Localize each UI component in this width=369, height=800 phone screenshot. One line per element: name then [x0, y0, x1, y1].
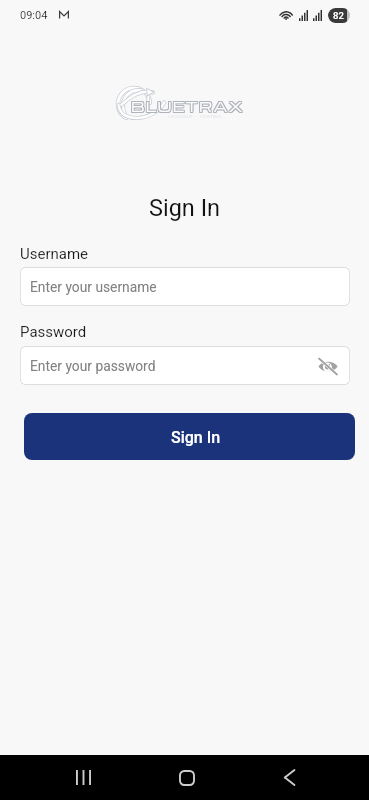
- button[interactable]: Sign In: [24, 413, 355, 460]
- staticText: Sign In: [0, 194, 369, 222]
- staticText: Password: [20, 323, 87, 341]
- button[interactable]: Enter your username: [20, 267, 350, 306]
- staticText: BLUETRAX: [130, 98, 244, 116]
- staticText: BLUETRAX: [131, 98, 245, 116]
- button[interactable]: Show password: [316, 354, 340, 378]
- button[interactable]: Enter your password: [20, 346, 350, 385]
- button[interactable]: Home: [163, 755, 211, 800]
- staticText: Sign In: [171, 428, 221, 447]
- staticText: 09:04: [20, 9, 48, 22]
- staticText: 82: [333, 10, 344, 21]
- staticText: Enter your username: [30, 279, 157, 295]
- staticText: BLUETRAX: [130, 96, 244, 114]
- staticText: Username: [20, 245, 89, 263]
- staticText: LOCATION · CONTROL: [168, 114, 223, 119]
- staticText: Enter your password: [30, 358, 156, 374]
- staticText: BLUETRAX: [132, 97, 246, 115]
- staticText: BLUETRAX: [132, 98, 246, 116]
- staticText: BLUETRAX: [132, 96, 246, 114]
- staticText: BLUETRAX: [131, 97, 245, 115]
- staticText: BLUETRAX: [131, 96, 245, 114]
- button[interactable]: Recent apps: [59, 755, 107, 800]
- staticText: BLUETRAX: [130, 97, 244, 115]
- button[interactable]: Back: [265, 755, 313, 800]
